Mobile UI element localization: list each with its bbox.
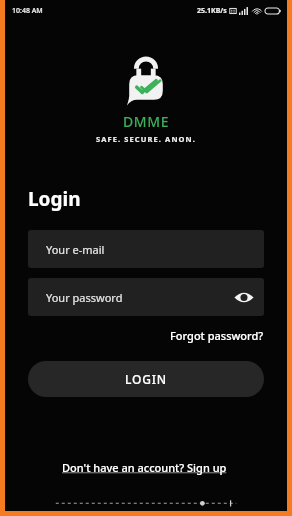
staticText: Your e-mail bbox=[46, 242, 105, 257]
button[interactable]: LOGIN bbox=[28, 361, 264, 397]
staticText: Login bbox=[28, 186, 81, 212]
button[interactable]: Your password bbox=[28, 278, 264, 316]
button[interactable]: Don't have an account? Sign up bbox=[56, 457, 236, 478]
staticText: DMME bbox=[123, 112, 170, 131]
staticText: Don't have an account? Sign up bbox=[62, 460, 230, 475]
button[interactable]: Show password bbox=[232, 285, 256, 309]
staticText: 10:48 AM bbox=[12, 6, 43, 16]
staticText: Your password bbox=[46, 290, 123, 305]
staticText: SAFE. SECURE. ANON. bbox=[96, 134, 197, 144]
staticText: 25.1KB/s bbox=[197, 6, 227, 16]
button[interactable]: Your e-mail bbox=[28, 230, 264, 268]
staticText: LOGIN bbox=[125, 371, 167, 387]
button[interactable]: Forgot password? bbox=[170, 326, 264, 345]
staticText: Forgot password? bbox=[170, 328, 264, 343]
